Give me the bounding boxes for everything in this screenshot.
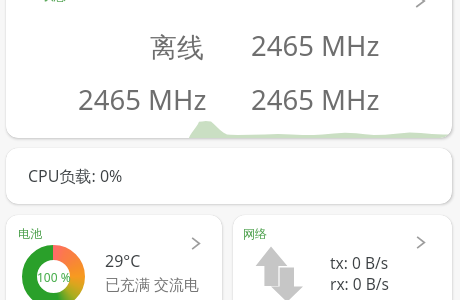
button[interactable]: 电池	[6, 215, 222, 300]
button[interactable]: 网络详情	[411, 232, 431, 252]
staticText: tx: 0 B/s	[330, 252, 389, 273]
button[interactable]: CPU状态	[6, 0, 452, 138]
staticText: CPU负载: 0%	[28, 165, 123, 187]
staticText: 29°C	[105, 250, 141, 272]
button[interactable]: 电池详情	[186, 233, 206, 253]
button[interactable]: CPU负载: 0%	[6, 148, 452, 204]
button[interactable]: 网络	[233, 215, 452, 300]
button[interactable]: CPU 详情	[410, 0, 430, 11]
staticText: CPU状态	[18, 0, 66, 3]
staticText: 已充满 交流电	[105, 274, 199, 294]
staticText: 网络	[243, 226, 267, 241]
staticText: 电池	[18, 226, 42, 241]
staticText: 100 %	[37, 269, 71, 285]
staticText: 2465 MHz	[78, 81, 207, 118]
staticText: 2465 MHz	[251, 27, 380, 64]
staticText: 离线	[150, 31, 204, 65]
staticText: 2465 MHz	[251, 81, 380, 118]
staticText: rx: 0 B/s	[330, 273, 389, 294]
